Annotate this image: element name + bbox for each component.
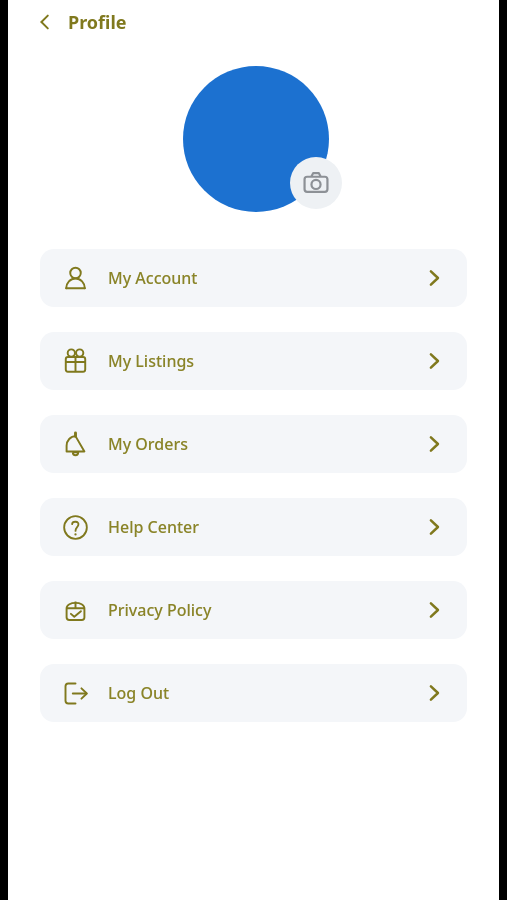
button[interactable]: Log Out — [40, 664, 467, 722]
staticText: Privacy Policy — [108, 599, 212, 621]
button[interactable]: Back — [28, 5, 62, 39]
staticText: Help Center — [108, 516, 200, 538]
staticText: My Account — [108, 267, 198, 289]
button[interactable]: Change photo — [290, 157, 342, 209]
button[interactable]: Help Center — [40, 498, 467, 556]
staticText: My Orders — [108, 433, 188, 455]
staticText: Log Out — [108, 682, 170, 704]
button[interactable]: My Listings — [40, 332, 467, 390]
staticText: Profile — [68, 10, 127, 35]
staticText: My Listings — [108, 350, 195, 372]
button[interactable]: My Account — [40, 249, 467, 307]
button[interactable]: My Orders — [40, 415, 467, 473]
button[interactable]: Privacy Policy — [40, 581, 467, 639]
